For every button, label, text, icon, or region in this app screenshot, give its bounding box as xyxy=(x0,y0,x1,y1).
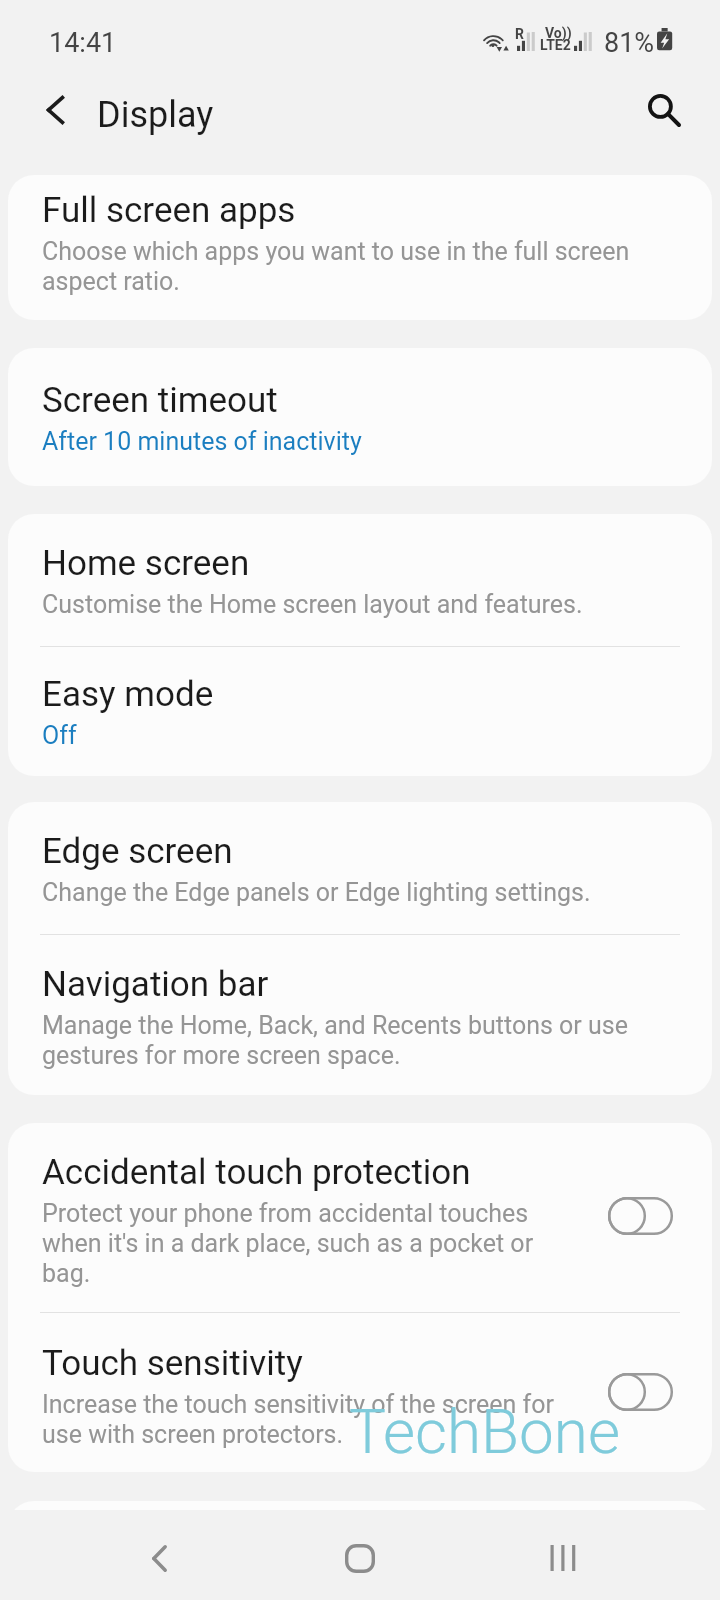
staticText: After 10 minutes of inactivity xyxy=(42,426,362,456)
button[interactable]: Full screen apps xyxy=(8,175,712,320)
staticText: Customise the Home screen layout and fea… xyxy=(42,589,583,619)
staticText: Touch sensitivity xyxy=(42,1343,303,1384)
button[interactable]: Touch sensitivity xyxy=(8,1313,712,1472)
staticText: Change the Edge panels or Edge lighting … xyxy=(42,877,591,907)
staticText: LTE2 xyxy=(540,38,571,53)
button[interactable]: Search xyxy=(637,83,693,139)
staticText: Choose which apps you want to use in the… xyxy=(42,236,682,296)
button[interactable]: Navigation bar xyxy=(8,935,712,1095)
staticText: R xyxy=(515,26,524,42)
button[interactable]: Home screen xyxy=(8,514,712,646)
button[interactable]: Accidental touch protection xyxy=(604,1193,676,1239)
staticText: Easy mode xyxy=(42,674,214,715)
button[interactable]: Back xyxy=(114,1513,204,1600)
staticText: 81% xyxy=(604,27,655,59)
button[interactable]: Accidental touch protection xyxy=(8,1123,712,1312)
button[interactable]: Screen timeout xyxy=(8,348,712,486)
button[interactable]: Touch sensitivity xyxy=(604,1369,676,1415)
staticText: Home screen xyxy=(42,543,250,584)
staticText: Accidental touch protection xyxy=(42,1152,471,1193)
button[interactable]: Easy mode xyxy=(8,647,712,776)
staticText: Edge screen xyxy=(42,831,233,872)
staticText: Off xyxy=(42,720,77,750)
staticText: Screen timeout xyxy=(42,380,278,421)
button[interactable]: Navigate up xyxy=(29,84,81,136)
button[interactable]: Recents xyxy=(518,1513,608,1600)
staticText: Display xyxy=(97,93,214,136)
staticText: Full screen apps xyxy=(42,190,296,231)
staticText: 14:41 xyxy=(49,27,117,59)
button[interactable]: Edge screen xyxy=(8,802,712,934)
staticText: Manage the Home, Back, and Recents butto… xyxy=(42,1010,682,1070)
staticText: Protect your phone from accidental touch… xyxy=(42,1198,579,1288)
staticText: TechBone xyxy=(349,1402,621,1466)
button[interactable]: Home xyxy=(315,1513,405,1600)
staticText: Navigation bar xyxy=(42,964,269,1005)
staticText: Increase the touch sensitivity of the sc… xyxy=(42,1389,579,1449)
staticText: Vo)) xyxy=(545,26,572,41)
